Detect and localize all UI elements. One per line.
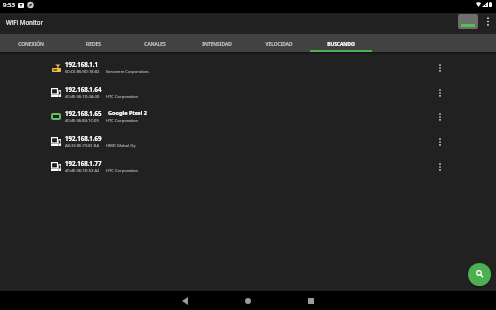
staticText: CANALES	[144, 41, 166, 48]
button[interactable]: Device options	[431, 105, 449, 129]
button[interactable]: 192.168.1.69	[0, 130, 496, 154]
staticText: HTC Corporation	[106, 118, 139, 124]
staticText: 192.168.1.69	[65, 134, 102, 142]
button[interactable]: Search	[468, 263, 491, 286]
button[interactable]: Device options	[431, 81, 449, 105]
button[interactable]: 192.168.1.64	[0, 81, 496, 105]
staticText: BUSCANDO	[327, 41, 355, 48]
staticText: A8:3E:0E:73:81:8A	[65, 143, 100, 149]
button[interactable]: Device options	[431, 56, 449, 80]
staticText: HTC Corporation	[106, 168, 139, 174]
button[interactable]: BUSCANDO	[310, 34, 372, 52]
button[interactable]: Device options	[431, 155, 449, 179]
staticText: 192.168.1.65	[65, 109, 102, 117]
staticText: Sercomm Corporation.	[106, 69, 150, 75]
staticText: WiFi Monitor	[6, 18, 44, 26]
staticText: CONEXIÓN	[18, 41, 44, 48]
staticText: 192.168.1.1	[65, 60, 99, 68]
button[interactable]: REDES	[62, 34, 124, 52]
button[interactable]: Toggle scan	[458, 14, 478, 29]
staticText: 9:53	[3, 1, 15, 9]
button[interactable]: 192.168.1.65	[0, 105, 496, 129]
button[interactable]: CONEXIÓN	[0, 34, 62, 52]
button[interactable]: VELOCIDAD	[248, 34, 310, 52]
button[interactable]: Back	[174, 291, 196, 310]
staticText: 40:4E:36:1D:2A:30	[65, 94, 100, 100]
button[interactable]: CANALES	[124, 34, 186, 52]
button[interactable]: Home	[237, 291, 259, 310]
staticText: INTENSIDAD	[202, 41, 232, 48]
button[interactable]: 192.168.1.1	[0, 56, 496, 80]
staticText: REDES	[86, 41, 101, 48]
staticText: HTC Corporation	[106, 94, 139, 100]
staticText: 40:4E:36:84:1C:05	[65, 118, 99, 124]
staticText: HMD Global Oy	[106, 143, 136, 149]
staticText: 60:CE:86:9D:18:82	[65, 69, 100, 75]
button[interactable]: More options	[479, 13, 496, 30]
button[interactable]: INTENSIDAD	[186, 34, 248, 52]
staticText: 192.168.1.64	[65, 85, 102, 93]
button[interactable]: Device options	[431, 130, 449, 154]
staticText: 192.168.1.77	[65, 159, 102, 167]
button[interactable]: Recent apps	[300, 291, 322, 310]
staticText: Google Pixel 2	[108, 109, 147, 117]
staticText: 40:4E:36:1D:53:A2	[65, 168, 100, 174]
staticText: VELOCIDAD	[265, 41, 293, 48]
button[interactable]: 192.168.1.77	[0, 155, 496, 179]
